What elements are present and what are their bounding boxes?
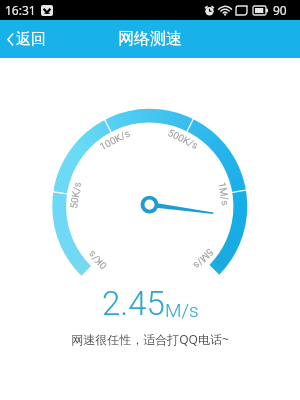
- staticText: 16:31: [5, 2, 36, 18]
- staticText: 2.45: [102, 284, 165, 323]
- staticText: M/s: [165, 299, 199, 321]
- staticText: 返回: [16, 30, 46, 49]
- button[interactable]: 返回: [0, 22, 58, 57]
- other: Download: [41, 5, 53, 16]
- staticText: 90: [273, 2, 287, 18]
- staticText: 网络测速: [118, 29, 182, 49]
- staticText: 网速很任性，适合打QQ电话~: [71, 331, 229, 347]
